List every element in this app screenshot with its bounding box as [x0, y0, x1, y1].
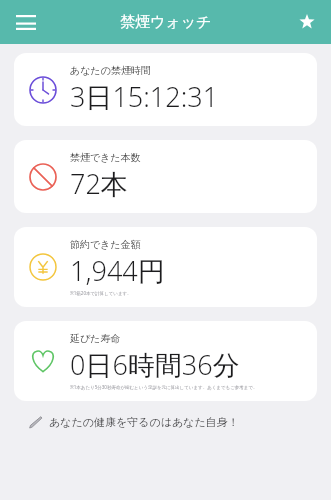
- staticText: あなたの健康を守るのはあなた自身！: [49, 415, 239, 429]
- staticText: 1,944円: [70, 252, 165, 289]
- button[interactable]: Favorite: [290, 5, 324, 39]
- staticText: 0日6時間36分: [70, 346, 240, 383]
- staticText: 延びた寿命: [70, 332, 121, 345]
- staticText: 禁煙できた本数: [70, 151, 141, 164]
- button[interactable]: 節約できた金額: [14, 227, 317, 307]
- staticText: ※1箱20本で計算しています。: [70, 290, 132, 296]
- button[interactable]: 延びた寿命: [14, 321, 317, 401]
- button[interactable]: Menu: [8, 4, 44, 40]
- staticText: 72本: [70, 165, 128, 202]
- staticText: 節約できた金額: [70, 238, 141, 251]
- button[interactable]: 禁煙できた本数: [14, 140, 317, 213]
- staticText: あなたの禁煙時間: [70, 64, 151, 77]
- staticText: 禁煙ウォッチ: [120, 13, 212, 32]
- staticText: 3日15:12:31: [70, 78, 219, 115]
- staticText: ※1本あたり5分30秒寿命が縮むという定説を元に算出しています。あくまでもご参考…: [70, 384, 258, 390]
- button[interactable]: あなたの禁煙時間: [14, 53, 317, 126]
